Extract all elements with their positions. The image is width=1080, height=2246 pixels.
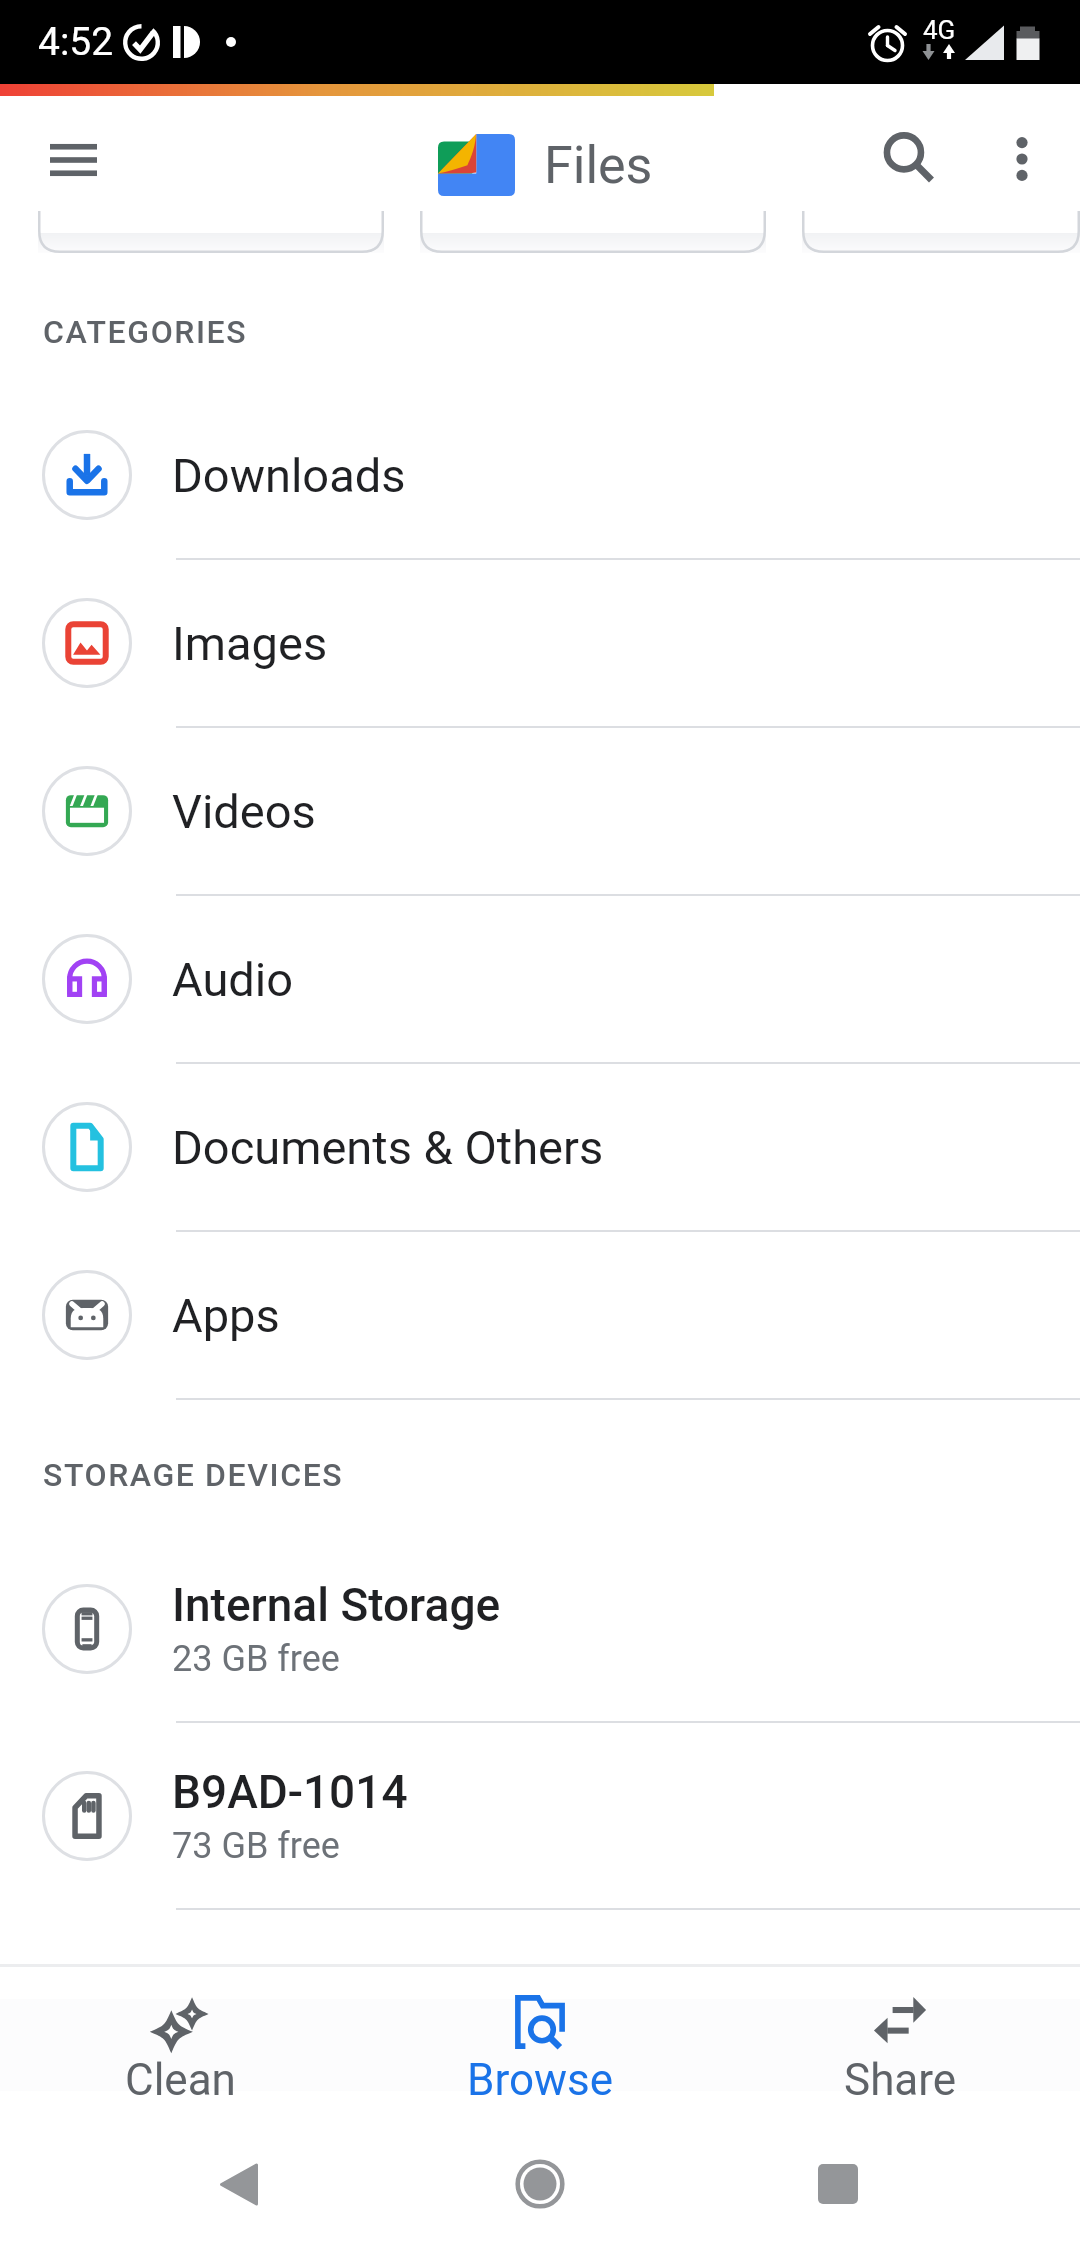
button[interactable]: Share — [720, 1964, 1080, 2129]
staticText: Internal Storage — [172, 1578, 501, 1632]
staticText: Clean — [125, 2054, 236, 2106]
staticText: Audio — [172, 952, 294, 1007]
staticText: Apps — [172, 1288, 280, 1343]
button[interactable] — [420, 233, 766, 253]
button[interactable]: Browse — [360, 1964, 720, 2129]
button[interactable]: Audio — [0, 896, 1080, 1064]
button[interactable]: Internal Storage — [0, 1536, 1080, 1723]
button[interactable]: Apps — [0, 1232, 1080, 1400]
button[interactable]: Home — [485, 2129, 595, 2239]
button[interactable]: Images — [0, 560, 1080, 728]
staticText: Files — [544, 135, 653, 196]
staticText: STORAGE DEVICES — [43, 1456, 344, 1494]
staticText: Share — [844, 2054, 957, 2106]
staticText: 73 GB free — [172, 1825, 340, 1867]
button[interactable]: Back — [184, 2129, 294, 2239]
staticText: Videos — [172, 784, 316, 839]
staticText: 4G — [923, 15, 956, 45]
button[interactable]: Open navigation drawer — [23, 115, 123, 215]
staticText: 23 GB free — [172, 1638, 340, 1680]
button[interactable]: More options — [972, 109, 1072, 209]
staticText: Downloads — [172, 448, 406, 503]
button[interactable]: Recent apps — [783, 2129, 893, 2239]
button[interactable]: Search — [860, 108, 960, 208]
button[interactable]: Videos — [0, 728, 1080, 896]
button[interactable] — [802, 233, 1080, 253]
staticText: Images — [172, 616, 328, 671]
button[interactable]: Downloads — [0, 392, 1080, 560]
staticText: CATEGORIES — [43, 313, 248, 351]
staticText: B9AD-1014 — [172, 1765, 408, 1819]
button[interactable]: Documents & Others — [0, 1064, 1080, 1232]
button[interactable]: B9AD-1014 — [0, 1723, 1080, 1910]
staticText: Browse — [467, 2054, 614, 2106]
staticText: Documents & Others — [172, 1120, 604, 1175]
button[interactable] — [38, 233, 384, 253]
button[interactable]: Clean — [0, 1964, 360, 2129]
staticText: 4:52 — [38, 19, 114, 65]
